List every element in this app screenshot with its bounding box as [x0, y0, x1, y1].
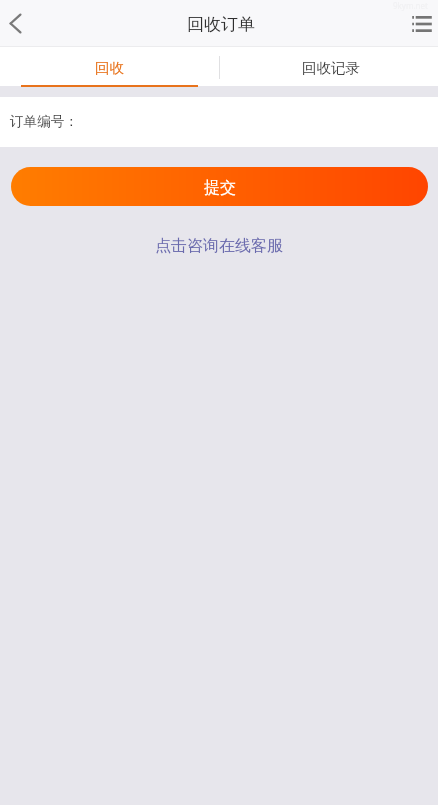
- button[interactable]: Menu: [396, 0, 438, 47]
- button[interactable]: Back: [0, 0, 42, 47]
- staticText: 提交: [204, 178, 236, 198]
- button[interactable]: 回收记录: [219, 47, 438, 86]
- staticText: 回收订单: [187, 14, 255, 35]
- button[interactable]: 点击咨询在线客服: [0, 231, 438, 258]
- staticText: 回收: [95, 59, 124, 77]
- button[interactable]: 回收: [0, 47, 219, 86]
- button[interactable]: 提交: [11, 167, 428, 206]
- staticText: 订单编号：: [10, 113, 78, 130]
- staticText: 点击咨询在线客服: [155, 236, 283, 256]
- staticText: 回收记录: [302, 59, 360, 77]
